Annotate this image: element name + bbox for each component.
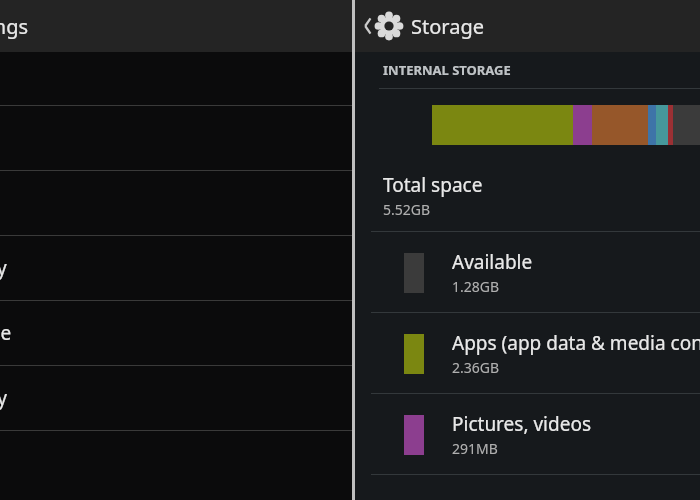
- staticText: 1.28GB: [452, 277, 500, 296]
- button[interactable]: Display: [0, 236, 352, 300]
- button[interactable]: Total space: [355, 159, 700, 231]
- button[interactable]: Navigate up, Settings: [359, 12, 490, 40]
- staticText: INTERNAL STORAGE: [383, 61, 511, 79]
- staticText: Settings: [0, 13, 29, 40]
- button[interactable]: Pictures, videos: [355, 394, 700, 474]
- staticText: Total space: [383, 172, 483, 198]
- staticText: 5.52GB: [383, 200, 431, 219]
- button[interactable]: Available: [355, 232, 700, 312]
- staticText: 291MB: [452, 439, 498, 458]
- button[interactable]: Apps (app data & media content): [355, 313, 700, 393]
- staticText: Battery: [0, 385, 7, 411]
- staticText: Storage: [411, 13, 484, 40]
- button[interactable]: Battery: [0, 366, 352, 430]
- staticText: Available: [452, 249, 533, 275]
- staticText: Storage: [0, 320, 12, 346]
- button[interactable]: Storage: [0, 301, 352, 365]
- staticText: Display: [0, 255, 7, 281]
- staticText: 2.36GB: [452, 358, 500, 377]
- staticText: Apps (app data & media content): [452, 330, 700, 356]
- staticText: Pictures, videos: [452, 411, 591, 437]
